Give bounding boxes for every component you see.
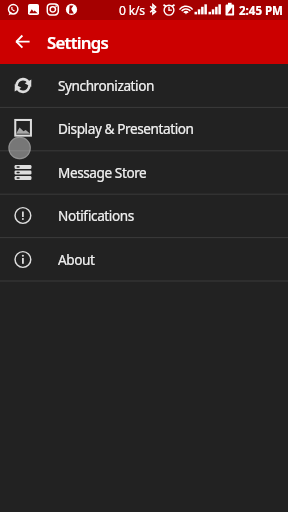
button[interactable]: Back	[9, 28, 37, 56]
staticText: About	[58, 250, 95, 269]
staticText: Display & Presentation	[58, 119, 194, 138]
staticText: Synchronization	[58, 76, 154, 95]
staticText: Notifications	[58, 206, 134, 225]
button[interactable]: About	[0, 238, 288, 281]
button[interactable]: Synchronization	[0, 64, 288, 107]
button[interactable]: Message Store	[0, 151, 288, 194]
button[interactable]: Notifications	[0, 194, 288, 237]
staticText: 0 k/s	[119, 2, 145, 18]
staticText: 2:45 PM	[239, 3, 283, 19]
staticText: Message Store	[58, 163, 147, 182]
button[interactable]: Display & Presentation	[0, 107, 288, 150]
staticText: Settings	[47, 31, 108, 54]
